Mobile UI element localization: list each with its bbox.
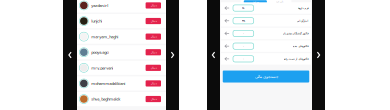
staticText: دنبال xyxy=(150,51,156,54)
button[interactable]: موجود xyxy=(244,0,267,4)
staticText: ۰ xyxy=(243,32,244,35)
staticText: فرم داروها xyxy=(297,6,308,9)
button[interactable]: maryam_haghi xyxy=(77,30,166,44)
button[interactable]: ۰ xyxy=(221,40,311,52)
button[interactable]: yazdan.irl xyxy=(77,0,166,12)
button[interactable]: ۳۹۸ xyxy=(221,15,311,26)
staticText: shva_baghmalek xyxy=(91,96,120,102)
button[interactable]: دنبال xyxy=(146,80,161,87)
staticText: ۳۹۸ xyxy=(242,19,245,22)
button[interactable]: دنبال xyxy=(146,65,161,71)
button[interactable]: pooya.agci xyxy=(77,45,166,59)
button[interactable]: shva_baghmalek xyxy=(77,92,166,106)
staticText: mohammadalikiani xyxy=(91,81,125,86)
staticText: maryam_haghi xyxy=(91,34,118,39)
button[interactable]: جستجوی مالی xyxy=(223,70,309,82)
staticText: mry.parvani xyxy=(91,65,113,70)
button[interactable]: دنبال xyxy=(146,49,161,55)
staticText: pooya.agci xyxy=(91,50,109,55)
button[interactable]: mohammadalikiani xyxy=(77,76,166,90)
button[interactable]: دنبال xyxy=(146,96,161,102)
button[interactable]: دنبال xyxy=(146,33,161,40)
staticText: ۰ xyxy=(243,45,244,48)
staticText: lunjchi xyxy=(91,18,102,24)
button[interactable]: Next screenshot xyxy=(312,0,325,110)
button[interactable]: دنبال xyxy=(146,18,161,24)
staticText: دنبال xyxy=(150,35,156,38)
staticText: جستجوی مالی xyxy=(254,74,277,79)
staticText: دنبال xyxy=(150,82,156,85)
button[interactable]: دنبال xyxy=(146,2,161,8)
button[interactable]: Previous screenshot xyxy=(207,0,220,110)
button[interactable]: ۰ xyxy=(221,28,311,39)
staticText: انبارگردانی xyxy=(296,19,308,22)
staticText: فاکتورهای جدید xyxy=(292,45,308,48)
button[interactable]: ۲۵۰ xyxy=(221,2,311,14)
button[interactable]: ناموجود xyxy=(268,0,291,4)
staticText: دنبال xyxy=(150,4,156,7)
button[interactable]: mry.parvani xyxy=(77,61,166,75)
staticText: دنبال xyxy=(150,66,156,69)
button[interactable]: lunjchi xyxy=(77,14,166,28)
staticText: ۰ xyxy=(243,57,244,60)
staticText: ۲۵۰ xyxy=(242,6,245,9)
button[interactable]: ۰ xyxy=(221,53,311,65)
staticText: فاکتورهای از دست رفته xyxy=(283,57,308,60)
staticText: موجود xyxy=(252,0,258,3)
staticText: yazdan.irl xyxy=(91,3,108,8)
staticText: دنبال xyxy=(150,97,156,100)
staticText: دنبال xyxy=(150,19,156,22)
staticText: فاکتور گذشتگان مشتریان xyxy=(282,32,308,35)
staticText: ناموجود xyxy=(275,0,283,3)
button[interactable]: Previous screenshot xyxy=(63,0,77,110)
button[interactable]: Next screenshot xyxy=(166,0,179,110)
